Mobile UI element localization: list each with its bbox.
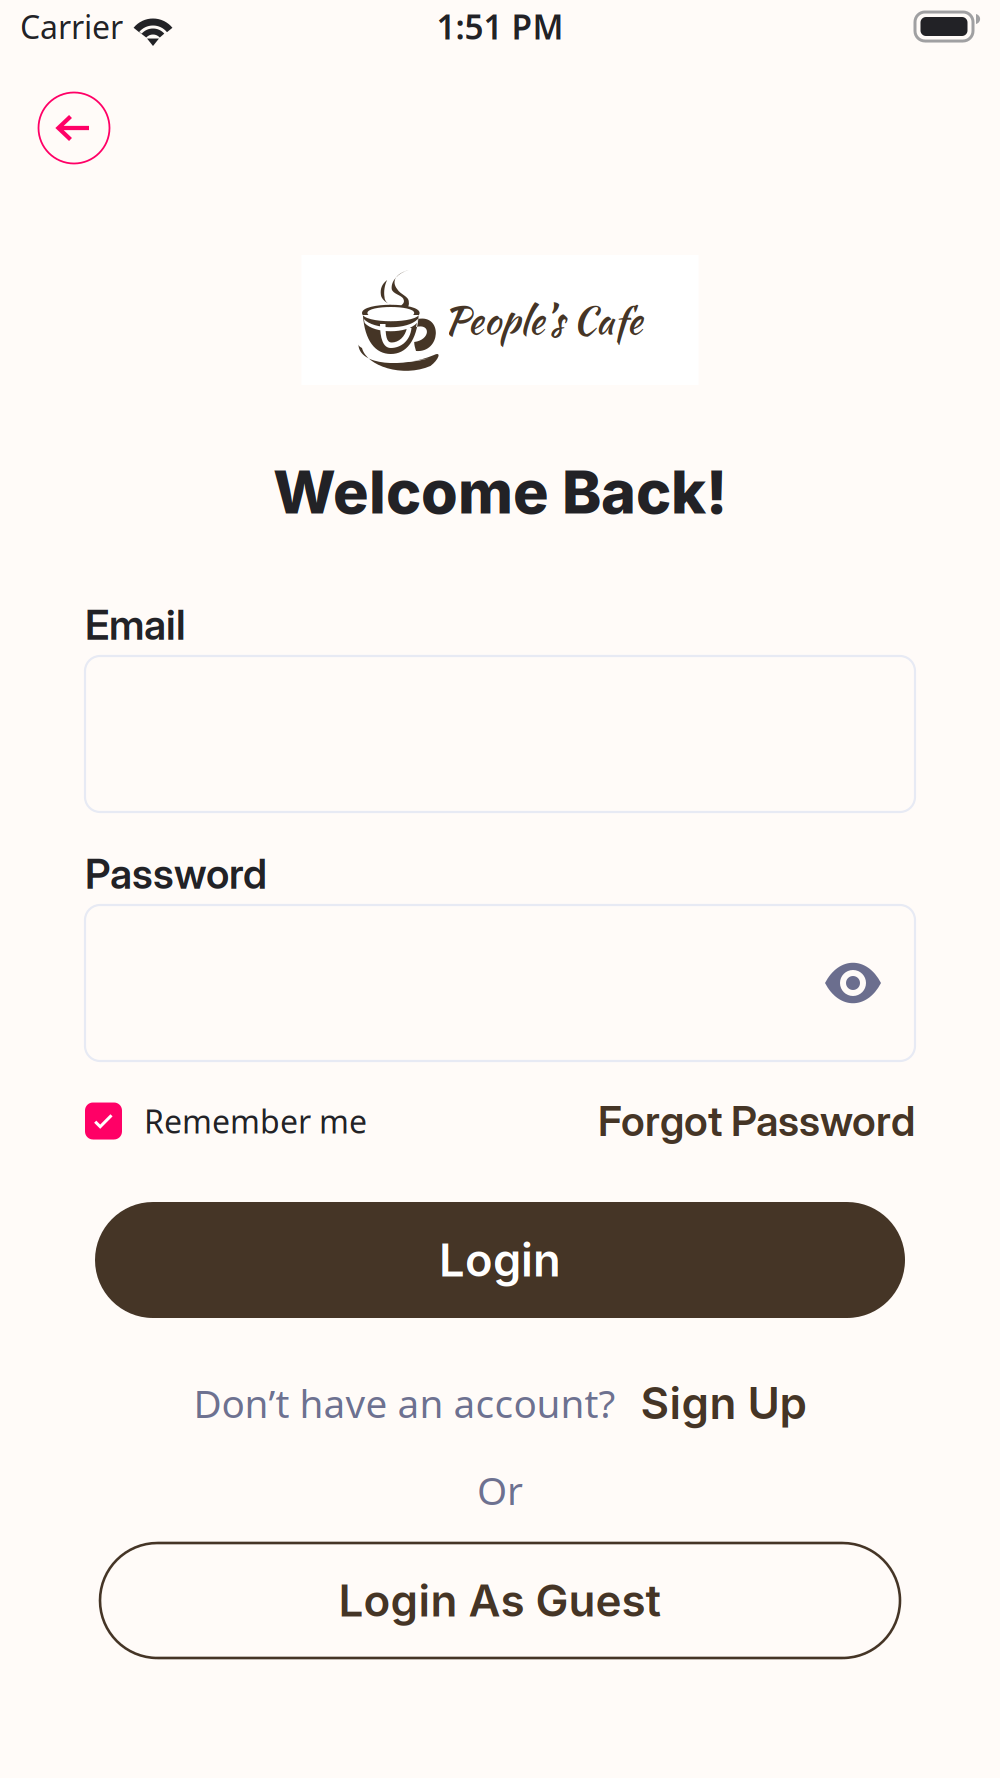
- button[interactable]: Show password: [824, 963, 915, 1003]
- staticText: Email: [85, 600, 186, 650]
- staticText: Forgot Password: [598, 1096, 915, 1146]
- staticText: Password: [85, 849, 267, 899]
- button[interactable]: Remember me: [85, 1101, 367, 1141]
- button[interactable]: Forgot Password: [598, 1101, 915, 1141]
- staticText: Welcome Back!: [273, 456, 727, 528]
- staticText: Login: [439, 1233, 561, 1287]
- staticText: Carrier: [20, 5, 123, 48]
- staticText: Login As Guest: [338, 1574, 661, 1627]
- button[interactable]: Login: [95, 1202, 905, 1318]
- staticText: People’s Cafe: [443, 292, 642, 348]
- button[interactable]: Login As Guest: [100, 1543, 900, 1658]
- staticText: Sign Up: [640, 1376, 806, 1430]
- button[interactable]: Back: [38, 92, 110, 164]
- staticText: 1:51 PM: [436, 4, 563, 49]
- button[interactable]: Password: [85, 905, 915, 1061]
- button[interactable]: Sign Up: [640, 1376, 806, 1430]
- staticText: Don’t have an account?: [193, 1377, 615, 1429]
- staticText: Or: [477, 1464, 523, 1516]
- staticText: Remember me: [144, 1100, 367, 1142]
